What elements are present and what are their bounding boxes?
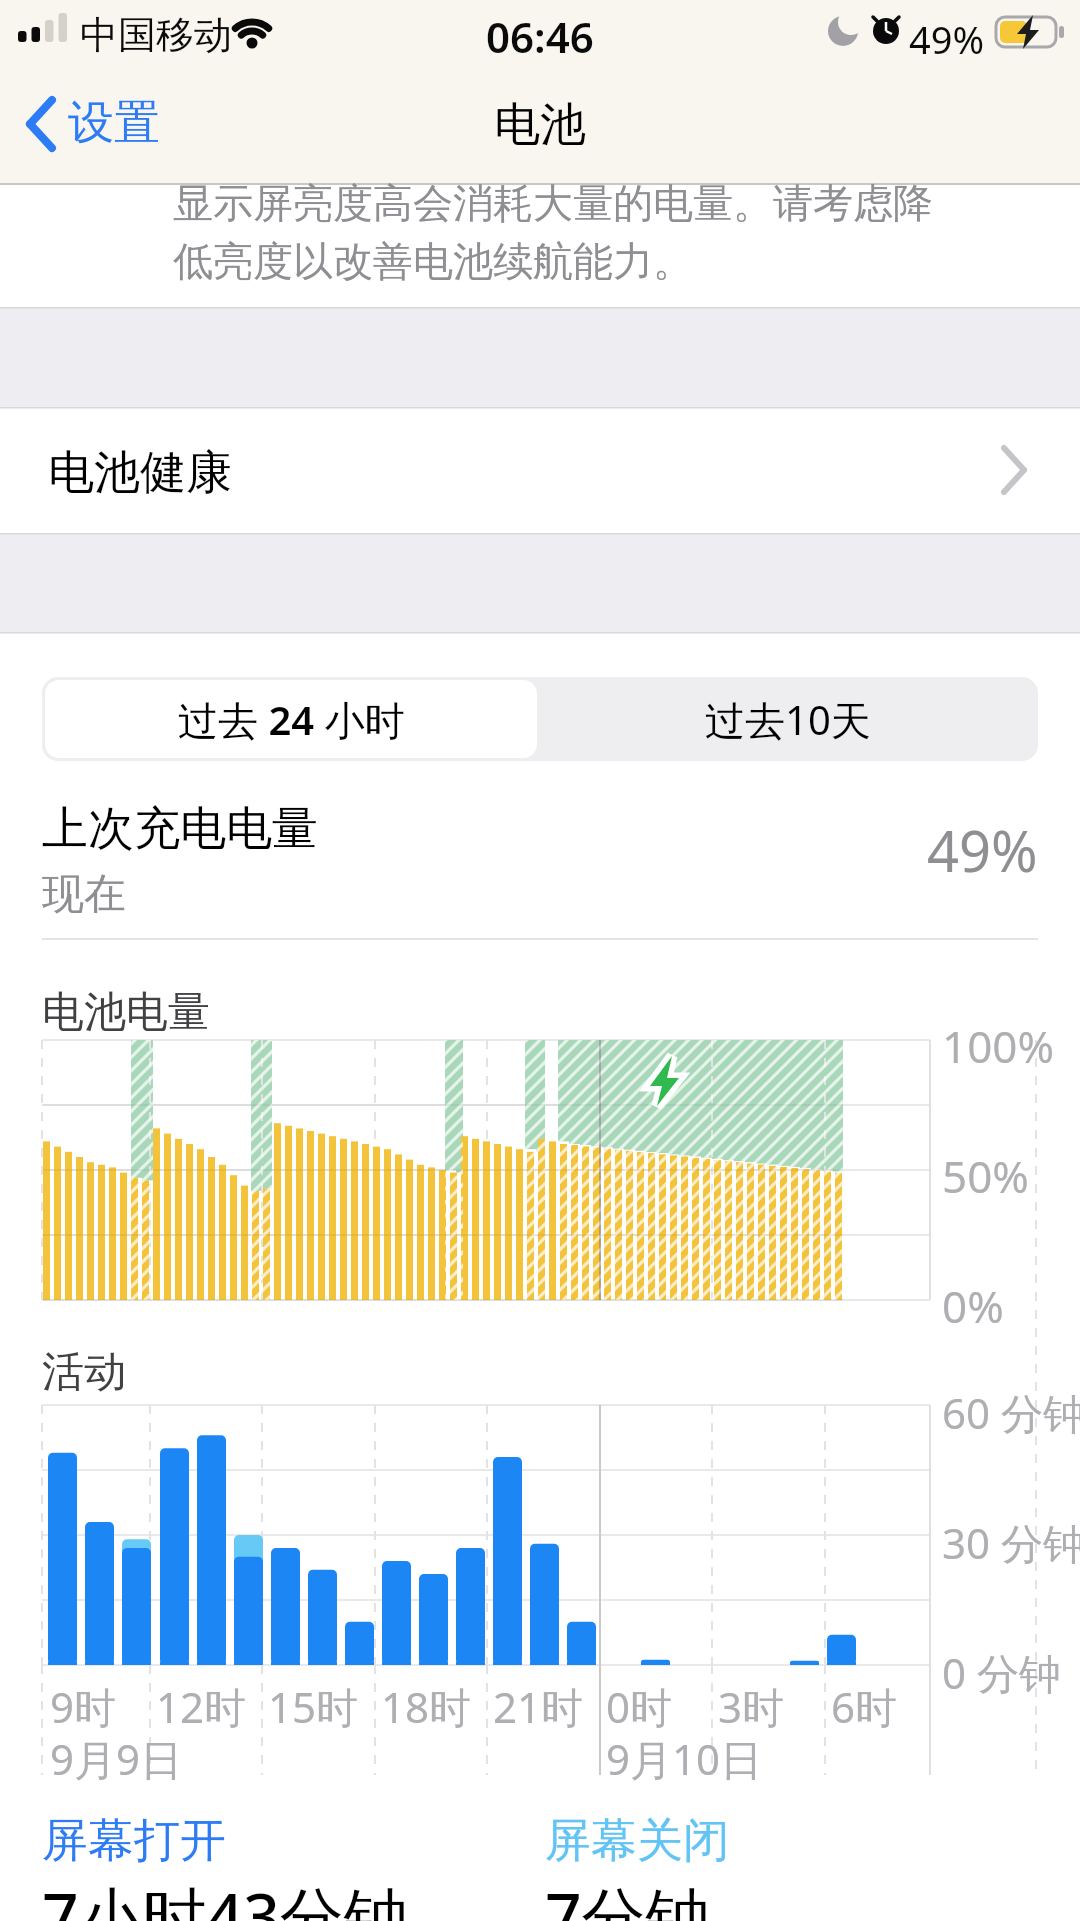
staticText: 屏幕关闭 bbox=[545, 1812, 729, 1870]
staticText: 电池健康 bbox=[48, 444, 232, 502]
staticText: 低亮度以改善电池续航能力。 bbox=[173, 236, 693, 286]
staticText: 显示屏亮度高会消耗大量的电量。请考虑降 bbox=[173, 178, 933, 228]
staticText: 电池电量 bbox=[42, 986, 210, 1039]
staticText: 7分钟 bbox=[545, 1872, 710, 1921]
staticText: 3时 bbox=[718, 1678, 785, 1735]
staticText: 中国移动 bbox=[80, 11, 232, 59]
staticText: 49% bbox=[927, 812, 1038, 888]
staticText: 9月10日 bbox=[606, 1730, 763, 1787]
staticText: 设置 bbox=[68, 94, 160, 152]
staticText: 21时 bbox=[493, 1678, 584, 1735]
staticText: 0% bbox=[942, 1276, 1004, 1336]
button[interactable]: 设置 bbox=[20, 90, 200, 160]
staticText: 15时 bbox=[268, 1678, 359, 1735]
staticText: 18时 bbox=[381, 1678, 472, 1735]
staticText: 过去 24 小时 bbox=[178, 692, 405, 747]
staticText: 上次充电电量 bbox=[42, 800, 318, 858]
staticText: 60 分钟 bbox=[942, 1384, 1080, 1441]
staticText: 30 分钟 bbox=[942, 1514, 1080, 1571]
staticText: 活动 bbox=[42, 1346, 126, 1399]
button[interactable]: 电池健康 bbox=[0, 408, 1080, 533]
staticText: 100% bbox=[942, 1016, 1055, 1076]
staticText: 12时 bbox=[156, 1678, 247, 1735]
staticText: 现在 bbox=[42, 868, 126, 921]
staticText: 49% bbox=[909, 13, 985, 65]
button[interactable]: 过去 24 小时 bbox=[45, 680, 537, 758]
staticText: 屏幕打开 bbox=[42, 1812, 226, 1870]
staticText: 7小时43分钟 bbox=[42, 1872, 408, 1921]
staticText: 9月9日 bbox=[50, 1730, 183, 1787]
staticText: 0 分钟 bbox=[942, 1644, 1061, 1701]
staticText: 50% bbox=[942, 1146, 1029, 1206]
staticText: 0时 bbox=[606, 1678, 673, 1735]
staticText: 6时 bbox=[831, 1678, 898, 1735]
staticText: 过去10天 bbox=[705, 692, 871, 747]
staticText: 06:46 bbox=[486, 8, 594, 65]
staticText: 9时 bbox=[50, 1678, 117, 1735]
button[interactable]: 过去10天 bbox=[537, 677, 1038, 761]
staticText: 电池 bbox=[494, 96, 586, 154]
